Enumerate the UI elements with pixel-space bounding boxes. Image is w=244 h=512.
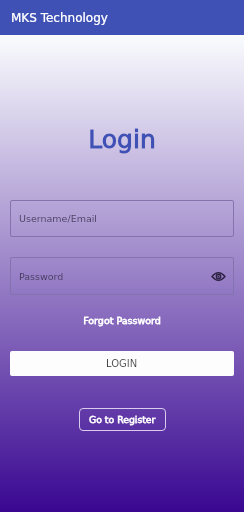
button[interactable]: Username/Email — [10, 200, 234, 237]
staticText: Go to Register — [89, 414, 156, 425]
staticText: MKS Technology — [11, 11, 108, 25]
staticText: Login — [0, 125, 244, 154]
button[interactable]: Go to Register — [79, 408, 166, 431]
staticText: Password — [19, 271, 64, 282]
button[interactable]: Forgot Password — [0, 313, 244, 328]
button[interactable]: LOGIN — [10, 351, 234, 376]
button[interactable]: Password — [10, 257, 234, 295]
button[interactable]: Show password — [208, 266, 228, 286]
staticText: LOGIN — [106, 358, 138, 370]
staticText: Username/Email — [19, 213, 97, 224]
